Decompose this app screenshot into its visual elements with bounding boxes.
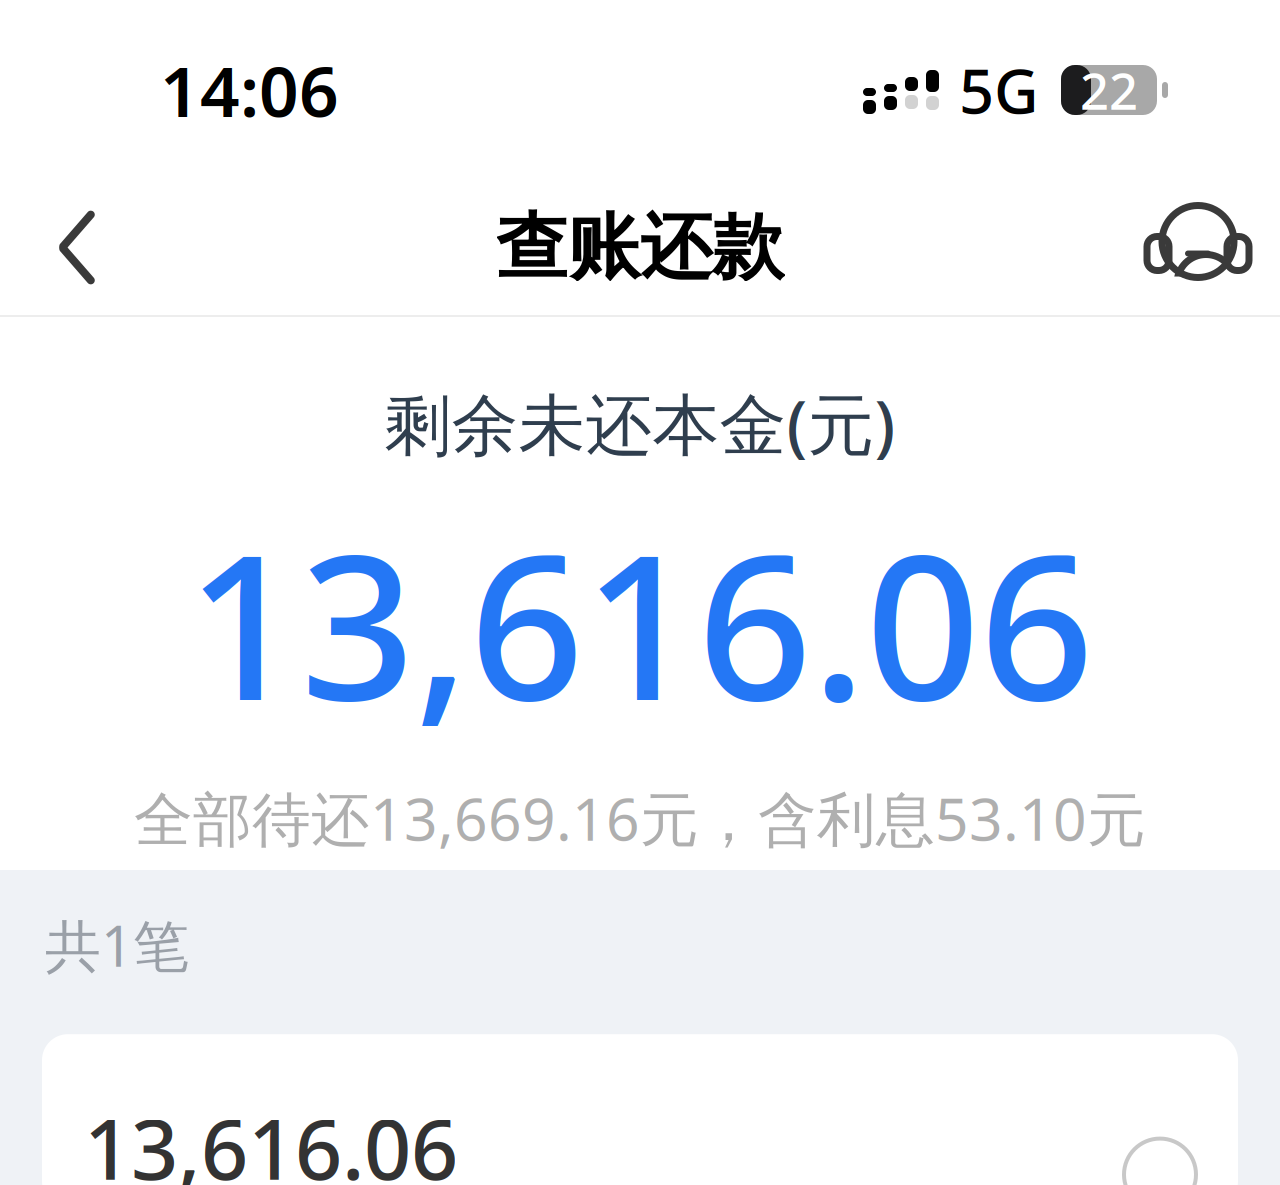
staticText: 13,616.06 — [186, 489, 1093, 755]
staticText: 5G — [959, 49, 1039, 131]
staticText: 查账还款 — [496, 203, 784, 292]
staticText: 全部待还13,669.16元，含利息53.10元 — [134, 779, 1146, 857]
button[interactable]: 13,616.06 — [42, 1034, 1238, 1185]
button[interactable]: Back — [22, 180, 132, 315]
staticText: 共1笔 — [45, 908, 189, 982]
button[interactable]: Customer service — [1138, 180, 1258, 315]
staticText: 22 — [1080, 56, 1138, 124]
staticText: 14:06 — [160, 44, 339, 136]
staticText: 13,616.06 — [84, 1093, 458, 1185]
staticText: 剩余未还本金(元) — [384, 379, 895, 467]
